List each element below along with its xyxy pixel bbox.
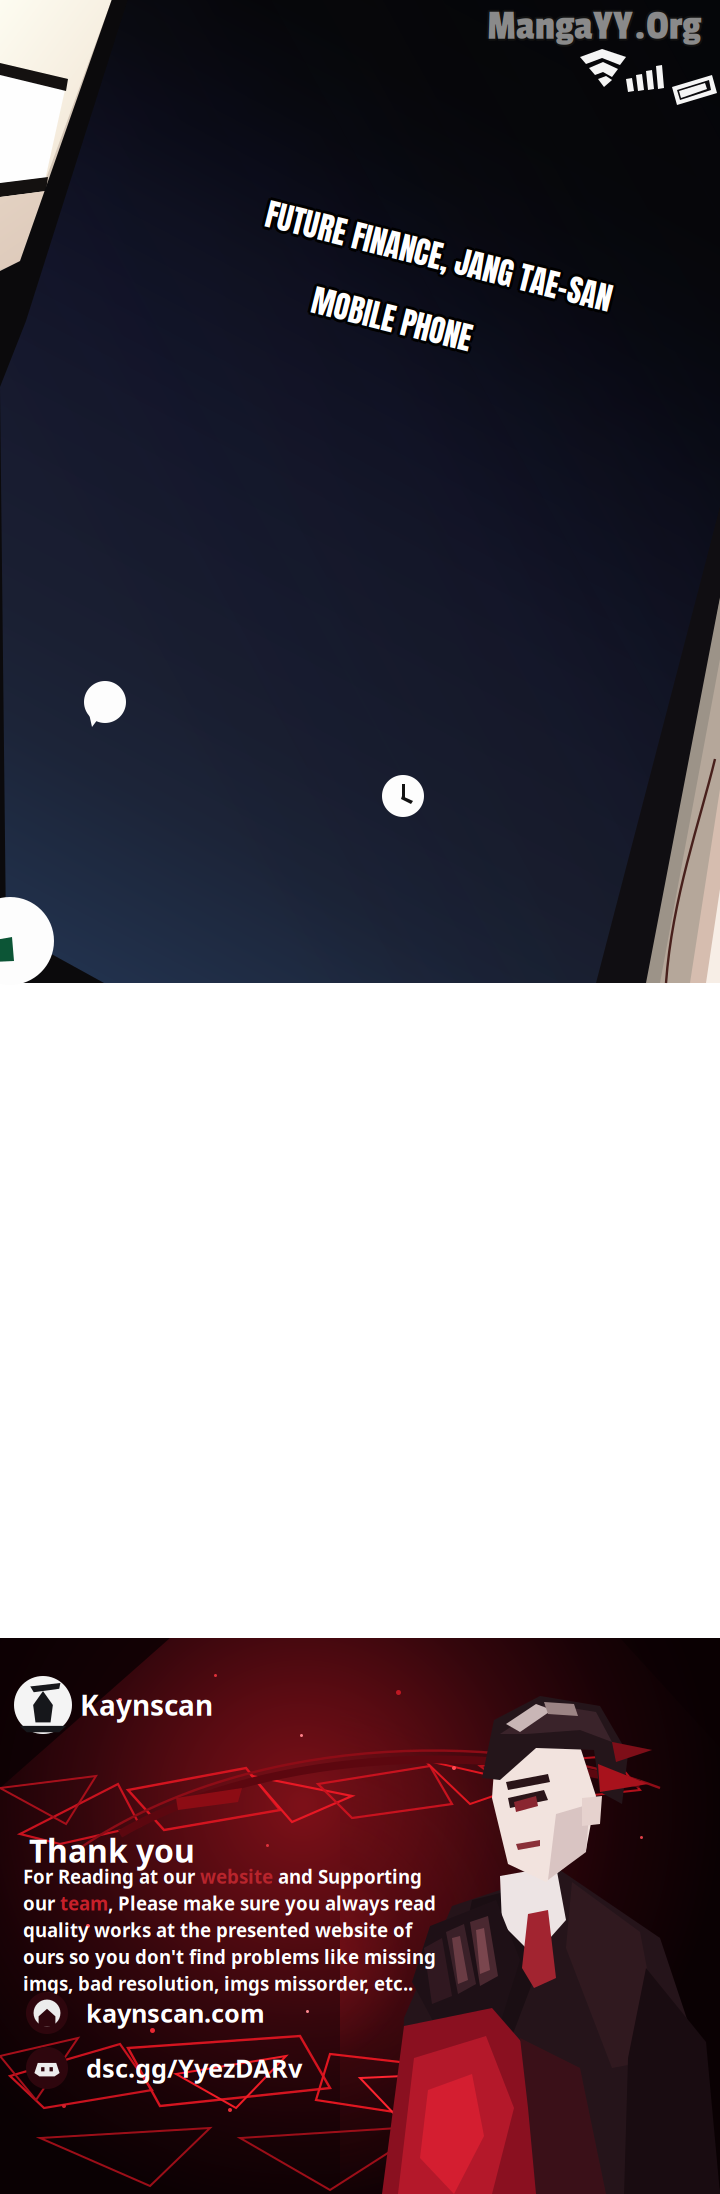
staticText: MangaYY.Org xyxy=(487,3,701,50)
staticText: MOBILE PHONE xyxy=(321,277,485,323)
staticText: MangaYY.Org xyxy=(487,5,701,52)
staticText: MOBILE PHONE xyxy=(316,279,480,325)
button[interactable]: kaynscan.com xyxy=(26,1992,265,2034)
staticText: FUTURE FINANCE, JANG TAE-SAN xyxy=(275,191,630,237)
staticText: MOBILE PHONE xyxy=(318,277,482,323)
staticText: dsc.gg/YyezDARv xyxy=(86,2051,302,2085)
staticText: MangaYY.Org xyxy=(487,1,701,48)
staticText: our xyxy=(23,1891,60,1916)
staticText: website xyxy=(200,1864,273,1889)
staticText: MOBILE PHONE xyxy=(318,280,482,326)
staticText: FUTURE FINANCE, JANG TAE-SAN xyxy=(272,191,627,237)
staticText: MangaYY.Org xyxy=(489,3,703,50)
staticText: MOBILE PHONE xyxy=(315,277,479,323)
staticText: kaynscan.com xyxy=(86,1996,265,2030)
staticText: ours so you don't find problems like mis… xyxy=(23,1944,436,1969)
staticText: For Reading at our xyxy=(23,1864,200,1889)
staticText: MOBILE PHONE xyxy=(318,274,482,320)
staticText: FUTURE FINANCE, JANG TAE-SAN xyxy=(270,193,625,239)
staticText: MOBILE PHONE xyxy=(316,275,480,321)
staticText: FUTURE FINANCE, JANG TAE-SAN xyxy=(274,189,629,235)
staticText: MangaYY.Org xyxy=(485,1,699,48)
staticText: FUTURE FINANCE, JANG TAE-SAN xyxy=(269,191,624,237)
staticText: FUTURE FINANCE, JANG TAE-SAN xyxy=(270,189,625,235)
button[interactable]: dsc.gg/YyezDARv xyxy=(26,2047,302,2089)
staticText: FUTURE FINANCE, JANG TAE-SAN xyxy=(272,194,627,240)
staticText: MangaYY.Org xyxy=(485,3,699,50)
staticText: and Supporting xyxy=(273,1864,422,1889)
staticText: imgs, bad resolution, imgs missorder, et… xyxy=(23,1971,413,1996)
staticText: , Please make sure you always read xyxy=(108,1891,436,1916)
staticText: team xyxy=(60,1891,108,1916)
staticText: FUTURE FINANCE, JANG TAE-SAN xyxy=(272,188,627,234)
staticText: MOBILE PHONE xyxy=(320,279,484,325)
staticText: MOBILE PHONE xyxy=(320,275,484,321)
staticText: Thank you xyxy=(29,1829,195,1871)
staticText: Kaynscan xyxy=(80,1686,213,1724)
staticText: MangaYY.Org xyxy=(488,4,702,51)
button[interactable]: Kaynscan xyxy=(14,1676,213,1734)
staticText: FUTURE FINANCE, JANG TAE-SAN xyxy=(274,193,629,239)
staticText: quality works at the presented website o… xyxy=(23,1918,412,1942)
